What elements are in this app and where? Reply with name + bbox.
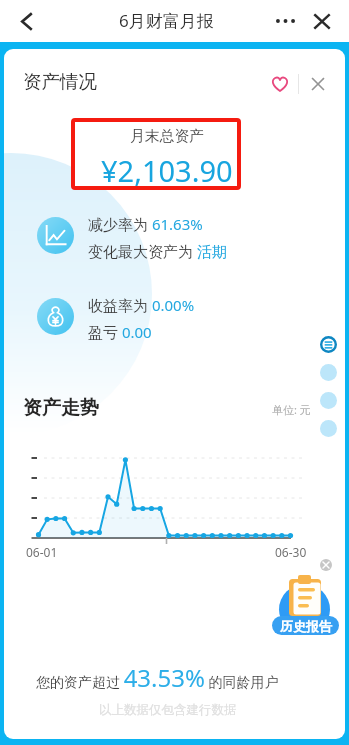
button[interactable]: Feedback (320, 336, 337, 353)
staticText: 减少率为 61.63% (88, 214, 203, 234)
staticText: 变化最大资产为 活期 (88, 241, 227, 261)
button[interactable]: Favorite (262, 64, 298, 104)
staticText: 资产走势 (23, 396, 99, 420)
staticText: 历史报告 (280, 618, 332, 634)
staticText: 盈亏 0.00 (88, 322, 152, 342)
staticText: 月末总资产 (130, 127, 204, 146)
button[interactable]: 历史报告 (265, 553, 345, 643)
button[interactable]: More options (268, 4, 302, 38)
staticText: 单位: 元 (272, 402, 311, 417)
button[interactable]: Back (5, 0, 47, 42)
staticText: 资产情况 (23, 70, 97, 93)
button[interactable]: Menu option (320, 364, 337, 381)
staticText: 06-30 (275, 544, 307, 560)
staticText: 以上数据仅包含建行数据 (99, 702, 237, 718)
button[interactable]: Dismiss report (320, 559, 332, 571)
button[interactable]: Menu option (320, 392, 337, 409)
button[interactable]: Dismiss card (299, 64, 337, 104)
staticText: 6月财富月报 (119, 9, 214, 32)
staticText: 06-01 (26, 544, 58, 560)
staticText: 您的资产超过 43.53% 的同龄用户 (36, 661, 279, 694)
button[interactable]: Close (305, 4, 339, 38)
staticText: ¥2,103.90 (101, 151, 233, 186)
button[interactable]: Menu option (320, 420, 337, 437)
staticText: 收益率为 0.00% (88, 295, 195, 315)
